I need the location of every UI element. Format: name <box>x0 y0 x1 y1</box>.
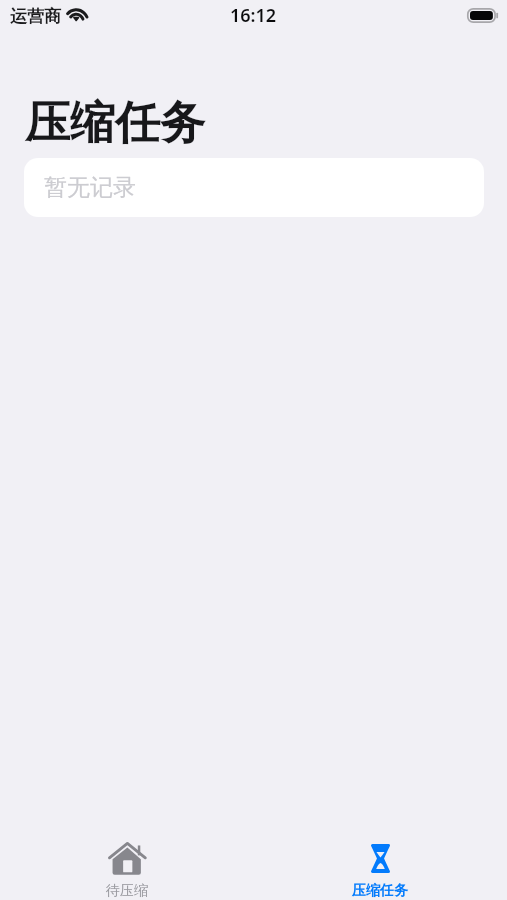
button[interactable]: 暂无记录 <box>24 158 484 217</box>
other: 待压缩 <box>108 842 146 875</box>
staticText: 压缩任务 <box>25 95 205 152</box>
button[interactable]: 压缩任务 <box>253 828 507 900</box>
staticText: 压缩任务 <box>352 882 408 900</box>
staticText: 待压缩 <box>106 882 148 900</box>
button[interactable]: 待压缩 <box>0 828 253 900</box>
staticText: 运营商 <box>10 6 61 27</box>
staticText: 16:12 <box>230 3 277 28</box>
staticText: 暂无记录 <box>44 173 136 202</box>
other: 压缩任务 <box>371 844 390 873</box>
